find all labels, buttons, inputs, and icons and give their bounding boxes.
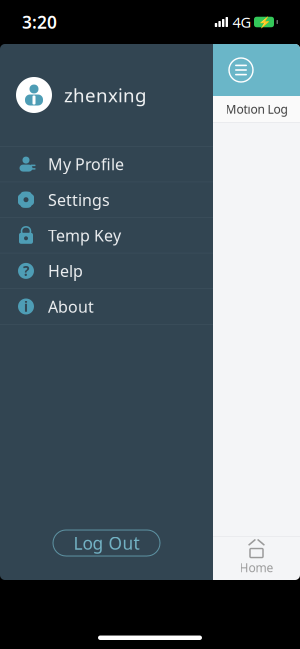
button[interactable]: Settings xyxy=(0,182,213,218)
staticText: 4G xyxy=(232,12,251,32)
staticText: Settings xyxy=(48,189,110,210)
button[interactable]: Home xyxy=(213,537,300,580)
button[interactable]: Log Out xyxy=(53,530,160,556)
staticText: ⚡ xyxy=(257,16,270,28)
staticText: My Profile xyxy=(48,153,124,175)
button[interactable]: My Profile xyxy=(0,147,213,182)
staticText: ? xyxy=(23,262,29,280)
staticText: 3:20 xyxy=(22,10,57,33)
staticText: zhenxing xyxy=(64,83,146,107)
button[interactable]: ? xyxy=(0,253,213,289)
button[interactable]: i xyxy=(0,289,213,325)
staticText: Log Out xyxy=(73,531,139,554)
staticText: Temp Key xyxy=(48,225,121,246)
staticText: Motion Log xyxy=(225,101,287,117)
staticText: Home xyxy=(239,559,273,575)
button[interactable]: Menu xyxy=(225,54,257,86)
staticText: Help xyxy=(48,260,83,281)
button[interactable]: Temp Key xyxy=(0,218,213,253)
staticText: About xyxy=(48,296,94,317)
staticText: i xyxy=(24,298,28,315)
